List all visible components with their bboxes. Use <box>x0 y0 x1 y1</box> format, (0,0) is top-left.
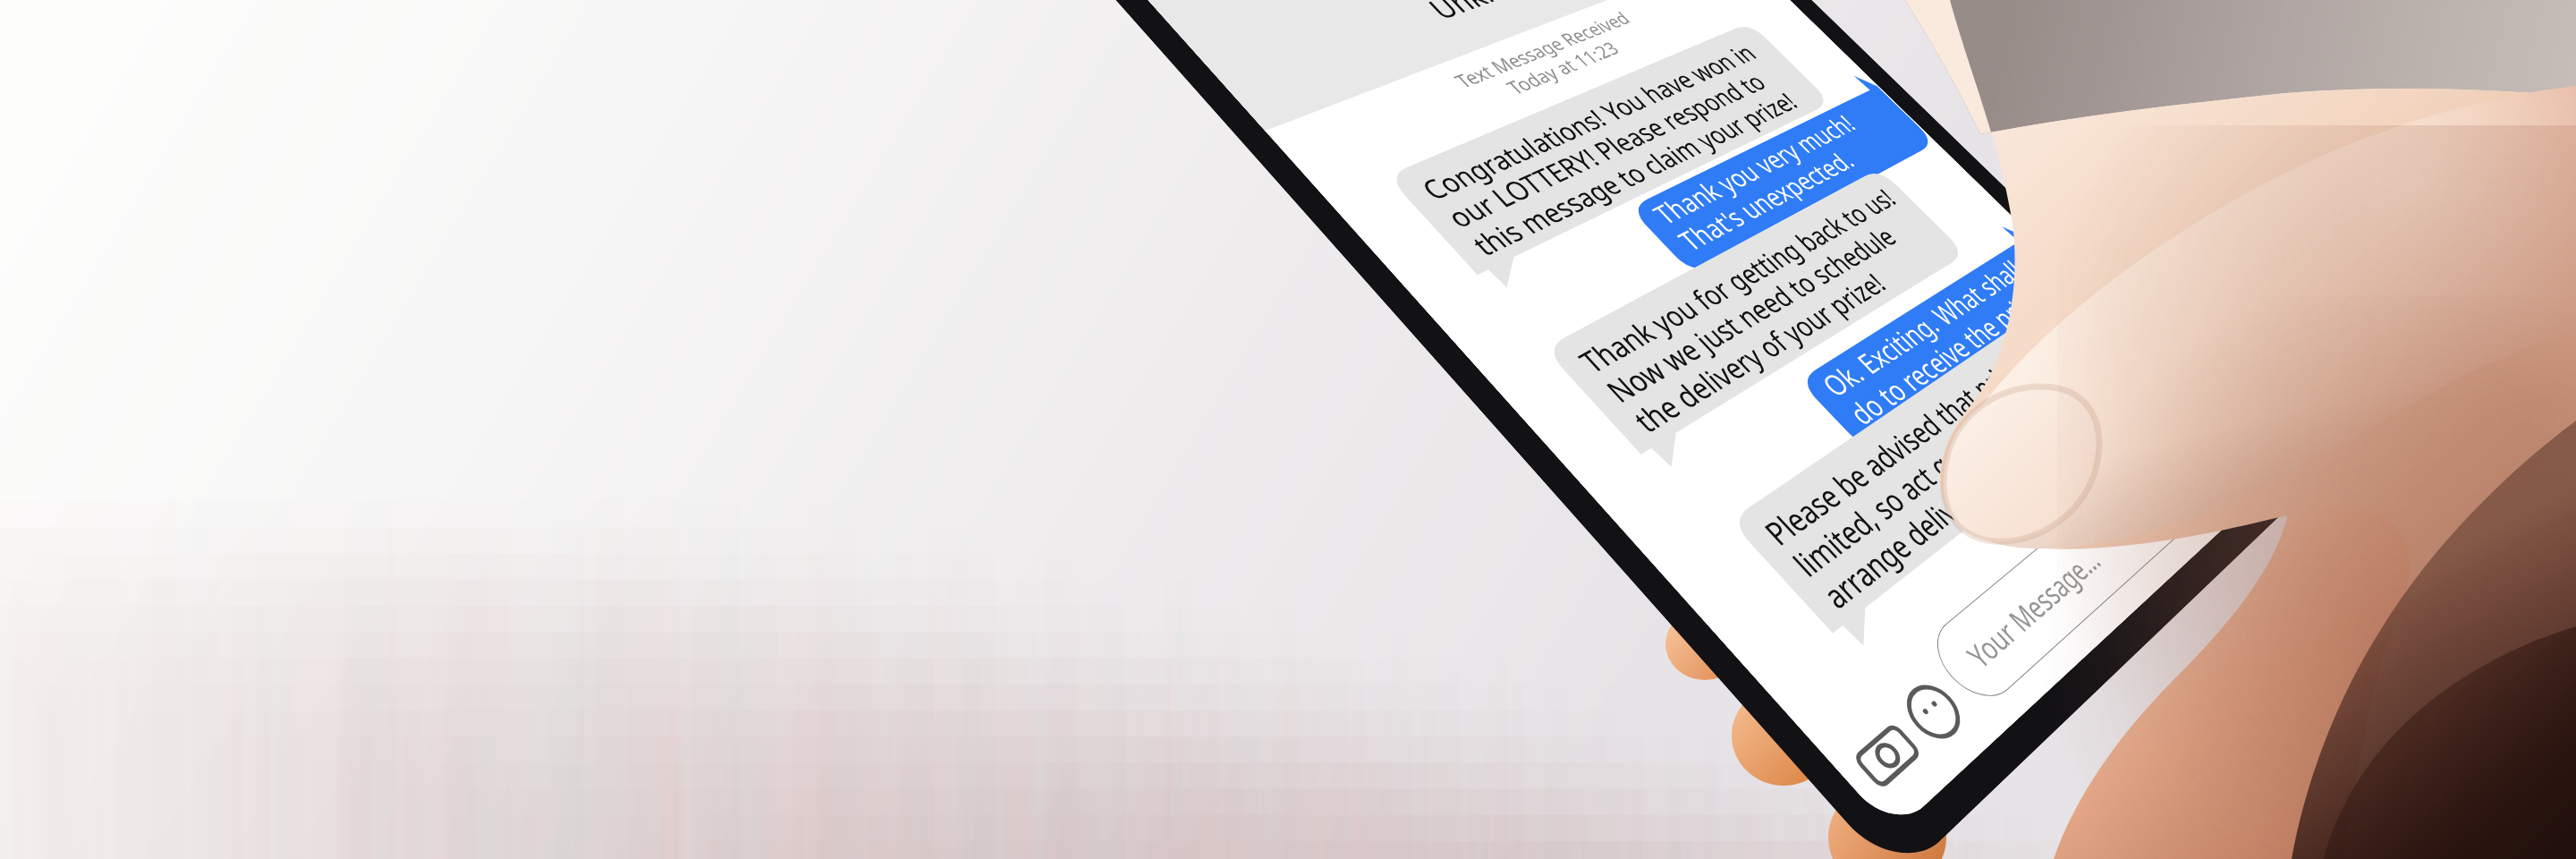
button[interactable]: Please be advised that prizes are limite… <box>1730 295 2169 655</box>
staticText: Ok. Exciting. What shall I do to receive… <box>1812 245 2069 433</box>
button[interactable]: Ok. Exciting. What shall I do to receive… <box>1781 222 2088 451</box>
button[interactable]: Thank you very much! That's unexpected. <box>1613 72 1936 274</box>
staticText: Please be advised that prizes are limite… <box>1754 309 2140 618</box>
staticText: Thank you for getting back to us! Now we… <box>1569 181 1953 441</box>
button[interactable]: Emoji <box>1892 672 1974 753</box>
staticText: Congratulations! You have won in our LOT… <box>1412 34 1818 263</box>
staticText: Text Message Received Today at 11:23 <box>1273 0 1782 185</box>
staticText: Thank you very much! That's unexpected. <box>1644 93 1916 258</box>
button[interactable]: Thank you for getting back to us! Now we… <box>1544 168 1982 475</box>
staticText: Unknown <box>1419 0 1559 27</box>
button[interactable]: Your Message... <box>1921 417 2250 711</box>
button[interactable]: Congratulations! You have won in our LOT… <box>1387 22 1847 294</box>
button[interactable]: Camera <box>1843 712 1928 796</box>
staticText: Your Message... <box>1957 540 2108 676</box>
